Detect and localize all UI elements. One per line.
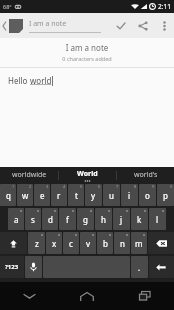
button[interactable]: r — [51, 184, 67, 206]
button[interactable]: l — [149, 208, 166, 230]
staticText: 0 characters added — [0, 55, 174, 62]
staticText: j — [120, 214, 123, 225]
button[interactable]: Recents — [116, 282, 174, 310]
staticText: I am a note — [0, 42, 174, 53]
staticText: x — [52, 238, 57, 249]
staticText: 0 — [170, 184, 173, 189]
staticText: Hello — [8, 75, 30, 86]
button[interactable]: e — [34, 184, 50, 206]
button[interactable]: z — [28, 232, 45, 254]
staticText: p — [163, 190, 168, 201]
staticText: m — [135, 238, 143, 249]
button[interactable]: Home — [58, 282, 116, 310]
staticText: I am a note — [29, 19, 67, 29]
button[interactable]: g — [77, 208, 94, 230]
button[interactable]: s — [25, 208, 41, 230]
staticText: i — [128, 190, 131, 201]
staticText: 2 — [29, 184, 32, 189]
button[interactable]: Shift — [0, 232, 27, 254]
button[interactable]: v — [80, 232, 96, 254]
button[interactable]: More options — [154, 16, 174, 36]
button[interactable]: Share — [132, 15, 154, 37]
button[interactable]: f — [59, 208, 76, 230]
staticText: r — [57, 190, 61, 201]
button[interactable]: k — [131, 208, 148, 230]
button[interactable]: m — [131, 232, 147, 254]
button[interactable]: x — [46, 232, 62, 254]
staticText: v — [86, 238, 91, 249]
staticText: world — [30, 75, 52, 86]
staticText: d — [48, 214, 53, 225]
staticText: z — [35, 238, 39, 249]
button[interactable]: worldwide — [0, 167, 58, 183]
staticText: w — [22, 190, 29, 201]
staticText: 5 — [80, 184, 83, 189]
staticText: e — [40, 190, 45, 201]
button[interactable]: j — [113, 208, 130, 230]
staticText: t — [75, 190, 78, 201]
button[interactable]: i — [121, 184, 138, 206]
button[interactable]: h — [95, 208, 112, 230]
staticText: o — [145, 190, 150, 201]
staticText: 6 — [98, 184, 101, 189]
button[interactable]: world's — [117, 167, 174, 183]
staticText: 4 — [63, 184, 66, 189]
button[interactable]: ?123 — [0, 256, 24, 278]
staticText: s — [31, 214, 35, 225]
staticText: 2:11 — [158, 2, 171, 11]
button[interactable]: b — [97, 232, 113, 254]
staticText: . — [138, 262, 141, 273]
button[interactable]: World — [59, 167, 116, 183]
staticText: 7 — [116, 184, 119, 189]
button[interactable]: a — [8, 208, 24, 230]
button[interactable]: u — [103, 184, 120, 206]
button[interactable]: Note color — [9, 19, 23, 33]
button[interactable]: Delete — [148, 232, 174, 254]
staticText: 68° — [3, 3, 12, 10]
staticText: u — [109, 190, 114, 201]
button[interactable]: I am a note — [29, 19, 101, 33]
staticText: l — [156, 214, 159, 225]
button[interactable]: o — [139, 184, 156, 206]
button[interactable]: Voice input — [25, 256, 42, 278]
button[interactable]: p — [157, 184, 174, 206]
staticText: worldwide — [12, 170, 47, 180]
staticText: world's — [134, 170, 158, 180]
button[interactable]: y — [85, 184, 102, 206]
staticText: h — [101, 214, 106, 225]
staticText: 3 — [46, 184, 49, 189]
staticText: c — [69, 238, 73, 249]
button[interactable]: Save — [110, 15, 132, 37]
button[interactable]: w — [17, 184, 33, 206]
staticText: World — [77, 169, 98, 179]
staticText: ?123 — [5, 263, 19, 271]
staticText: n — [120, 238, 125, 249]
staticText: k — [137, 214, 142, 225]
button[interactable]: c — [63, 232, 79, 254]
button[interactable]: Back — [0, 13, 9, 38]
staticText: 8 — [134, 184, 137, 189]
staticText: y — [91, 190, 96, 201]
staticText: g — [83, 214, 88, 225]
button[interactable]: . — [131, 256, 148, 278]
button[interactable]: d — [42, 208, 58, 230]
button[interactable]: q — [0, 184, 16, 206]
button[interactable]: Hide keyboard — [0, 282, 58, 310]
staticText: 9 — [152, 184, 155, 189]
staticText: b — [103, 238, 108, 249]
staticText: q — [6, 190, 11, 201]
button[interactable]: t — [68, 184, 84, 206]
button[interactable]: n — [114, 232, 130, 254]
staticText: a — [14, 214, 19, 225]
button[interactable]: Enter — [149, 256, 174, 278]
staticText: f — [66, 214, 69, 225]
staticText: 1 — [12, 184, 15, 189]
